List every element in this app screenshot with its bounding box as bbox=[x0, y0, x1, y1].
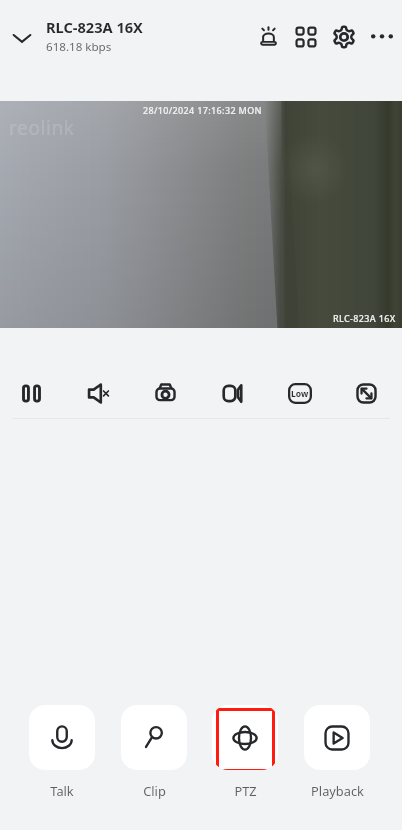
button[interactable]: Quality Low bbox=[266, 381, 333, 405]
staticText: 618.18 kbps bbox=[46, 39, 112, 55]
button[interactable]: Alarm bbox=[249, 18, 287, 56]
staticText: Playback bbox=[311, 782, 364, 799]
button[interactable]: Mute bbox=[65, 381, 132, 405]
button[interactable]: Snapshot bbox=[132, 381, 199, 405]
button[interactable]: Fullscreen bbox=[333, 381, 400, 405]
button[interactable] bbox=[29, 705, 95, 770]
button[interactable]: Collapse bbox=[6, 21, 38, 53]
button[interactable] bbox=[121, 705, 187, 770]
staticText: Talk bbox=[50, 782, 74, 799]
staticText: reolink bbox=[9, 115, 75, 141]
staticText: Clip bbox=[143, 782, 166, 799]
staticText: 28/10/2024 17:16:32 MON bbox=[143, 104, 262, 116]
button[interactable]: Settings bbox=[325, 18, 363, 56]
staticText: RLC-823A 16X bbox=[46, 17, 143, 37]
button[interactable] bbox=[212, 705, 278, 770]
staticText: PTZ bbox=[234, 782, 257, 799]
staticText: RLC-823A 16X bbox=[333, 312, 396, 324]
button[interactable]: Layout bbox=[287, 18, 325, 56]
staticText: Low bbox=[291, 388, 309, 400]
button[interactable]: Record bbox=[199, 381, 266, 405]
button[interactable]: More bbox=[363, 18, 401, 56]
button[interactable]: Pause bbox=[0, 381, 65, 405]
button[interactable] bbox=[304, 705, 370, 770]
